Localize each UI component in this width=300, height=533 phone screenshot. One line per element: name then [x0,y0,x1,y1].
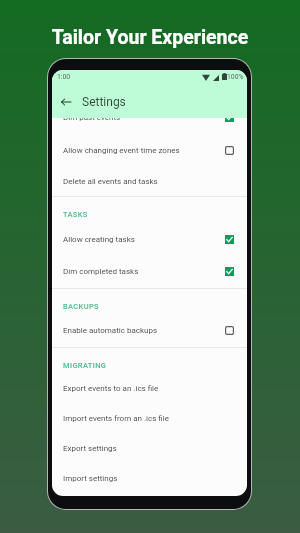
staticText: Dim past events [63,113,225,122]
staticText: Export events to an .ics file [63,384,159,393]
button[interactable]: Allow changing event time zones [52,134,247,167]
button[interactable]: MIGRATING [52,348,247,373]
button[interactable]: Delete all events and tasks [52,166,247,196]
button[interactable]: BACKUPS [52,289,247,314]
staticText: Allow changing event time zones [63,146,225,155]
staticText: Enable automatic backups [63,326,225,335]
button[interactable]: Export settings [52,433,247,463]
staticText: Export settings [63,444,117,453]
staticText: Import settings [63,474,118,483]
staticText: BACKUPS [63,302,99,311]
button[interactable]: Enable automatic backups [52,314,247,347]
staticText: Tailor Your Experience [0,26,300,49]
button[interactable]: Back [58,90,74,113]
staticText: Delete all events and tasks [63,177,158,186]
staticText: 1:00 [57,73,71,81]
staticText: TASKS [63,210,88,219]
button[interactable]: Dim completed tasks [52,255,247,288]
button[interactable]: Export events to an .ics file [52,373,247,403]
staticText: Import events from an .ics file [63,414,169,423]
staticText: Settings [82,95,126,109]
staticText: MIGRATING [63,361,107,370]
staticText: 100% [227,73,244,81]
staticText: Dim completed tasks [63,267,225,276]
button[interactable]: Allow creating tasks [52,223,247,256]
button[interactable]: Dim past events [52,101,247,134]
button[interactable]: Import events from an .ics file [52,403,247,433]
button[interactable]: Import settings [52,463,247,493]
button[interactable]: TASKS [52,197,247,222]
staticText: Allow creating tasks [63,235,225,244]
